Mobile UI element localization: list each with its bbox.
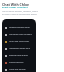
staticText: Workshop room numbers [9,33,32,36]
button[interactable]: Opening keynote times [2,24,36,31]
button[interactable]: Workshop room numbers [2,31,36,38]
staticText: Evening panel guests [9,54,28,57]
staticText: Event Lower Assistant [2,5,28,8]
button[interactable]: Lunch and snack spots [2,38,36,45]
staticText: Lunch and snack spots [9,40,30,43]
staticText: Travel and parking [9,68,26,71]
button[interactable]: Networking happy hour [2,45,36,52]
staticText: Networking happy hour [9,47,31,50]
staticText: Chat With Chloe [2,2,30,7]
button[interactable]: Travel and parking [2,66,36,72]
staticText: Closing remarks [9,61,24,64]
button[interactable]: Evening panel guests [2,52,36,59]
staticText: Opening keynote times [9,26,30,29]
button[interactable]: Closing remarks [2,59,36,66]
staticText: Ask me about sessions, speakers, rooms o… [2,10,39,16]
